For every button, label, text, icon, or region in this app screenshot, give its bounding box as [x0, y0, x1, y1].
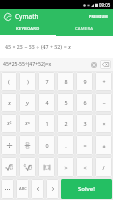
- button[interactable]: Move cursor right: [46, 179, 59, 199]
- staticText: ABC: [19, 186, 27, 192]
- staticText: +: [102, 78, 106, 85]
- staticText: 5: [64, 99, 68, 106]
- staticText: >: [64, 164, 68, 171]
- staticText: y: [26, 99, 29, 106]
- button[interactable]: 6: [76, 93, 93, 112]
- button[interactable]: Absolute value: [38, 157, 55, 177]
- button[interactable]: y: [19, 93, 36, 112]
- button[interactable]: 5: [57, 93, 74, 112]
- button[interactable]: 7: [38, 72, 55, 91]
- staticText: 45*25-55÷(47+52)=x: [3, 61, 52, 68]
- staticText: /: [102, 164, 105, 171]
- button[interactable]: CAMERA: [56, 23, 113, 35]
- staticText: (: [8, 78, 10, 85]
- button[interactable]: Equals: [76, 135, 93, 155]
- button[interactable]: Fraction: [19, 135, 36, 155]
- staticText: ): [27, 78, 29, 85]
- button[interactable]: x: [1, 93, 17, 112]
- staticText: x: [8, 99, 11, 106]
- staticText: PREMIUM: [89, 14, 109, 19]
- button[interactable]: Nth root: [19, 157, 36, 177]
- staticText: Cymath: [15, 12, 39, 21]
- button[interactable]: Times: [95, 114, 112, 133]
- staticText: 0: [45, 142, 49, 149]
- staticText: KEYBOARD: [16, 26, 40, 32]
- button[interactable]: Backspace: [100, 60, 111, 69]
- button[interactable]: Less than: [76, 157, 93, 177]
- staticText: 2: [64, 120, 68, 127]
- staticText: 7: [45, 78, 49, 85]
- button[interactable]: Move cursor left: [31, 179, 44, 199]
- button[interactable]: 0: [38, 135, 55, 155]
- staticText: 8: [64, 78, 68, 85]
- button[interactable]: 8: [57, 72, 74, 91]
- staticText: 6: [83, 99, 87, 106]
- button[interactable]: 4: [38, 93, 55, 112]
- staticText: 1: [45, 120, 49, 127]
- button[interactable]: 3: [76, 114, 93, 133]
- staticText: CAMERA: [75, 26, 94, 32]
- button[interactable]: Divide: [1, 135, 17, 155]
- staticText: 45 × 25 − 55 ÷ (47 + 52) = x: [5, 43, 71, 50]
- staticText: Solve!: [78, 185, 95, 193]
- button[interactable]: KEYBOARD: [0, 23, 56, 35]
- button[interactable]: 9: [76, 72, 93, 91]
- staticText: ±: [102, 142, 106, 149]
- staticText: =: [83, 142, 87, 149]
- button[interactable]: x to the power n: [19, 114, 36, 133]
- button[interactable]: Plus minus: [95, 135, 112, 155]
- staticText: −: [102, 99, 106, 106]
- staticText: 3: [83, 120, 87, 127]
- button[interactable]: Letters: [16, 179, 29, 199]
- button[interactable]: Plus: [95, 72, 112, 91]
- staticText: x2: [7, 120, 12, 127]
- button[interactable]: Slash: [95, 157, 112, 177]
- button[interactable]: 1: [38, 114, 55, 133]
- staticText: .: [65, 142, 67, 149]
- button[interactable]: Clear: [89, 60, 98, 69]
- button[interactable]: (: [1, 72, 17, 91]
- staticText: ×: [102, 120, 106, 127]
- button[interactable]: x squared: [1, 114, 17, 133]
- staticText: xn: [25, 120, 30, 127]
- button[interactable]: ): [19, 72, 36, 91]
- button[interactable]: Square root: [1, 157, 17, 177]
- button[interactable]: Greater than: [57, 157, 74, 177]
- button[interactable]: 2: [57, 114, 74, 133]
- staticText: <: [83, 164, 87, 171]
- staticText: 4: [45, 99, 49, 106]
- button[interactable]: Decimal point: [57, 135, 74, 155]
- button[interactable]: Solve!: [61, 179, 112, 199]
- staticText: 09:05: [99, 2, 111, 8]
- button[interactable]: Minus: [95, 93, 112, 112]
- button[interactable]: More symbols: [1, 179, 14, 199]
- button[interactable]: PREMIUM: [85, 10, 113, 23]
- staticText: 9: [83, 78, 87, 85]
